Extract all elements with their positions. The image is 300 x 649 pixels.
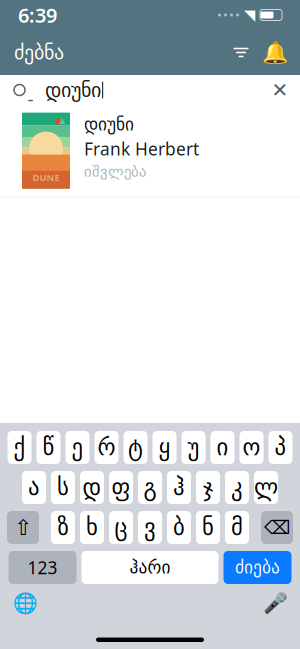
staticText: ◥ <box>244 7 255 23</box>
staticText: 6:39 <box>18 2 57 28</box>
button[interactable]: ვ <box>138 511 162 544</box>
button[interactable]: ფ <box>109 471 133 504</box>
staticText: ბ <box>173 515 185 540</box>
button[interactable]: ჰარი <box>81 551 218 584</box>
button[interactable]: DUNE <box>0 105 300 197</box>
staticText: 🔔 <box>261 40 288 65</box>
button[interactable]: Switch keyboard <box>8 588 42 618</box>
staticText: ძიება <box>235 558 280 577</box>
staticText: ზ <box>57 515 68 540</box>
staticText: ე <box>71 435 83 460</box>
staticText: უ <box>187 435 199 460</box>
button[interactable]: ნ <box>196 511 220 544</box>
staticText: ც <box>114 515 127 540</box>
button[interactable]: პ <box>268 431 292 464</box>
button[interactable]: ი <box>210 431 234 464</box>
button[interactable]: დ <box>80 471 104 504</box>
button[interactable]: ზ <box>51 511 75 544</box>
staticText: კ <box>231 475 243 500</box>
button[interactable]: ხ <box>80 511 104 544</box>
staticText: ქ <box>13 435 25 460</box>
button[interactable]: ო <box>239 431 263 464</box>
staticText: ⇧ <box>14 515 32 540</box>
button[interactable]: უ <box>181 431 205 464</box>
staticText: 123 <box>27 556 57 579</box>
staticText: გ <box>143 475 156 500</box>
button[interactable]: Clear <box>266 76 294 104</box>
staticText: ✕ <box>271 79 288 101</box>
staticText: DUNE <box>32 171 59 184</box>
button[interactable]: ც <box>109 511 133 544</box>
button[interactable]: კ <box>225 471 249 504</box>
staticText: ლ <box>254 475 278 500</box>
button[interactable]: ლ <box>254 471 278 504</box>
staticText: Frank Herbert <box>84 137 199 160</box>
staticText: დ <box>82 475 101 500</box>
button[interactable]: ჯ <box>196 471 220 504</box>
staticText: ჰარი <box>129 558 170 577</box>
staticText: ფ <box>111 475 130 500</box>
staticText: 🎤 <box>262 592 287 614</box>
button[interactable]: წ <box>36 431 60 464</box>
staticText: ხ <box>86 515 98 540</box>
button[interactable]: Shift <box>7 511 39 544</box>
staticText: წ <box>42 435 54 460</box>
button[interactable]: რ <box>94 431 118 464</box>
staticText: ყ <box>158 435 170 460</box>
button[interactable]: Delete <box>261 511 293 544</box>
staticText: ჰ <box>173 475 185 500</box>
staticText: 🌐 <box>12 592 37 614</box>
button[interactable]: ბ <box>167 511 191 544</box>
button[interactable]: გ <box>138 471 162 504</box>
staticText: ნ <box>202 515 214 540</box>
staticText: ▲ <box>59 116 65 125</box>
button[interactable]: 123 <box>8 551 76 584</box>
button[interactable]: Dictation <box>258 588 292 618</box>
staticText: მ <box>231 515 243 540</box>
staticText: ს <box>57 475 69 500</box>
staticText: ვ <box>144 515 156 540</box>
staticText: იშვლება <box>84 163 146 180</box>
staticText: ⌫ <box>264 517 290 538</box>
staticText: ძებნა <box>14 41 64 64</box>
staticText: პ <box>274 435 286 460</box>
button[interactable]: ს <box>51 471 75 504</box>
button[interactable]: ქ <box>7 431 31 464</box>
button[interactable]: ტ <box>123 431 147 464</box>
button[interactable]: ჰ <box>167 471 191 504</box>
staticText: რ <box>97 435 115 460</box>
staticText: ა <box>28 475 40 500</box>
button[interactable]: ე <box>65 431 89 464</box>
staticText: ტ <box>128 435 143 460</box>
button[interactable]: Filter <box>224 35 258 69</box>
staticText: დიუნი <box>45 79 101 101</box>
button[interactable]: ყ <box>152 431 176 464</box>
button[interactable]: მ <box>225 511 249 544</box>
button[interactable]: ა <box>22 471 46 504</box>
staticText: ო <box>242 435 260 460</box>
button[interactable]: ძიება <box>223 551 291 584</box>
staticText: ი <box>216 435 228 460</box>
staticText: ჯ <box>203 475 213 500</box>
staticText: დიუნი <box>84 115 134 134</box>
button[interactable]: Notifications <box>258 35 292 69</box>
